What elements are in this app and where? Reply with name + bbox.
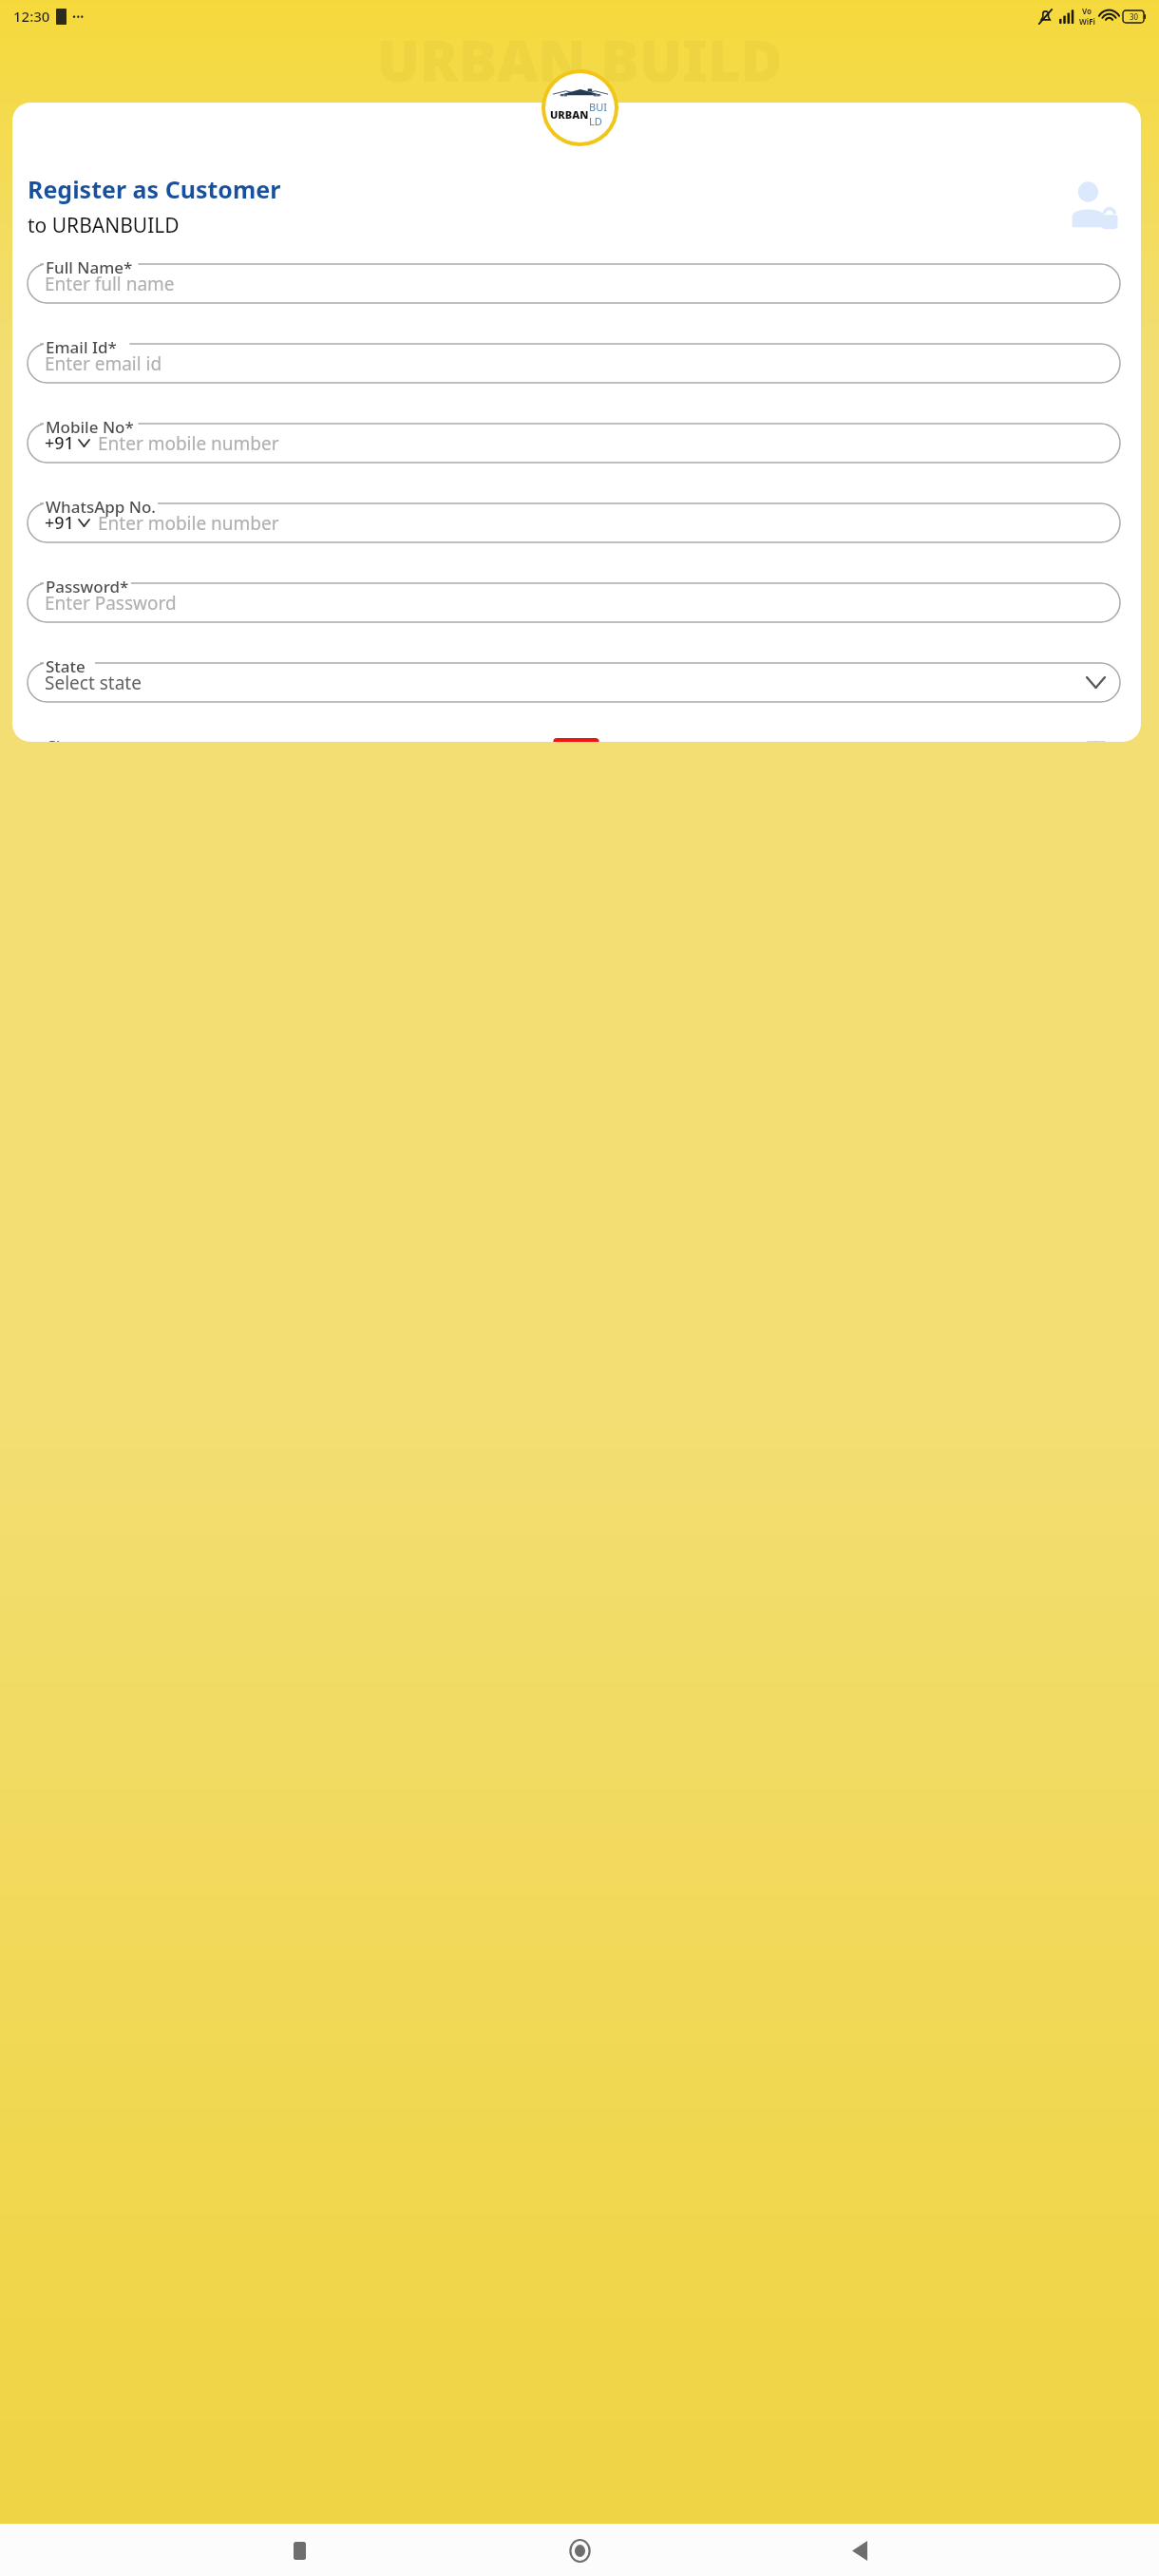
button[interactable]: Recents [276, 2528, 322, 2573]
staticText: ••• [72, 9, 85, 24]
staticText: WiFi [1079, 16, 1095, 27]
staticText: Vo [1082, 6, 1092, 16]
staticText: Enter mobile number [98, 431, 1105, 456]
staticText: Register as Customer [28, 173, 281, 205]
staticText: Email Id* [46, 336, 117, 358]
staticText: Password* [46, 576, 129, 597]
staticText: Mobile No* [46, 416, 134, 438]
button[interactable]: Back [837, 2528, 883, 2573]
staticText: to URBANBUILD [28, 212, 180, 239]
staticText: URBAN [550, 107, 589, 122]
button[interactable]: Mobile No* [28, 416, 1120, 463]
button[interactable]: WhatsApp No. [28, 496, 1120, 542]
staticText: BUILD [589, 100, 611, 128]
staticText: URBAN BUILD [0, 21, 1159, 99]
staticText: WhatsApp No. [46, 496, 156, 518]
staticText: City [46, 735, 75, 742]
staticText: State [46, 655, 85, 677]
button[interactable]: City [28, 735, 1120, 742]
staticText: +91 [45, 511, 74, 535]
staticText: Enter mobile number [98, 511, 1105, 536]
button[interactable]: Email Id* [28, 336, 1120, 383]
staticText: Full Name* [46, 256, 133, 278]
staticText: Enter full name [45, 272, 1105, 296]
button[interactable]: Full Name* [28, 256, 1120, 303]
button[interactable]: State [28, 655, 1120, 702]
staticText: 12:30 [13, 7, 50, 26]
staticText: 30 [1130, 11, 1139, 22]
staticText: +91 [45, 431, 74, 455]
button[interactable]: Password* [28, 576, 1120, 622]
staticText: Enter Password [45, 591, 1105, 616]
button[interactable]: Urban Build logo [545, 73, 615, 142]
other: Customer account [1067, 181, 1120, 231]
staticText: Select state [45, 671, 1087, 695]
button[interactable]: Home [557, 2528, 602, 2573]
staticText: Enter email id [45, 351, 1105, 376]
